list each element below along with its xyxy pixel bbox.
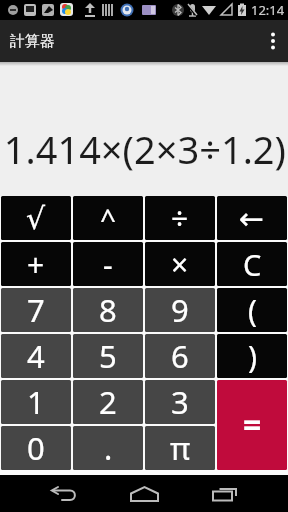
staticText: 12:14 (251, 1, 285, 19)
staticText: C (243, 245, 262, 284)
button[interactable]: ) (217, 334, 287, 378)
staticText: + (27, 244, 45, 285)
staticText: - (103, 244, 113, 285)
staticText: 1 (27, 381, 45, 423)
button[interactable]: = (217, 380, 287, 470)
staticText: 5 (99, 335, 117, 377)
button[interactable]: ÷ (145, 196, 215, 240)
button[interactable]: 3 (145, 380, 215, 424)
button[interactable]: × (145, 242, 215, 286)
staticText: 6 (171, 335, 189, 377)
staticText: × (171, 244, 189, 285)
button[interactable]: 4 (1, 334, 71, 378)
staticText: 7 (27, 289, 45, 331)
button[interactable]: + (1, 242, 71, 286)
staticText: . (104, 427, 113, 469)
staticText: 1.414×(2×3÷1.2) (3, 123, 286, 175)
staticText: 計算器 (10, 32, 55, 51)
staticText: 8 (99, 289, 117, 331)
staticText: ) (248, 336, 257, 377)
button[interactable]: 5 (73, 334, 143, 378)
button[interactable] (104, 475, 184, 512)
button[interactable]: 8 (73, 288, 143, 332)
button[interactable]: C (217, 242, 287, 286)
button[interactable]: ← (217, 196, 287, 240)
staticText: π (170, 427, 191, 469)
staticText: ÷ (171, 198, 189, 239)
button[interactable]: . (73, 426, 143, 470)
button[interactable]: 0 (1, 426, 71, 470)
staticText: ← (239, 201, 265, 236)
button[interactable]: 7 (1, 288, 71, 332)
button[interactable]: ( (217, 288, 287, 332)
button[interactable] (24, 475, 104, 512)
button[interactable] (258, 20, 288, 62)
staticText: √ (26, 201, 46, 236)
button[interactable]: 6 (145, 334, 215, 378)
staticText: 3 (171, 381, 189, 423)
staticText: 9 (171, 289, 189, 331)
staticText: 0 (27, 427, 45, 469)
button[interactable]: π (145, 426, 215, 470)
button[interactable]: 2 (73, 380, 143, 424)
staticText: ( (248, 290, 257, 331)
button[interactable]: ^ (73, 196, 143, 240)
staticText: 2 (99, 381, 117, 423)
staticText: ^ (100, 199, 117, 237)
button[interactable]: - (73, 242, 143, 286)
staticText: 4 (27, 335, 45, 377)
button[interactable] (184, 475, 264, 512)
button[interactable]: √ (1, 196, 71, 240)
staticText: = (243, 403, 262, 447)
button[interactable]: 1 (1, 380, 71, 424)
button[interactable]: 9 (145, 288, 215, 332)
